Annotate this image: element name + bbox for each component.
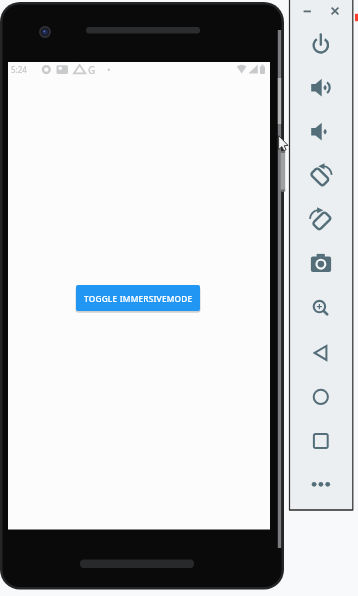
button[interactable] [299,3,315,19]
button[interactable] [303,379,339,415]
button[interactable] [327,3,343,19]
button[interactable] [303,335,339,371]
staticText: G [88,63,96,77]
button[interactable] [303,115,339,151]
button[interactable] [303,71,339,107]
button[interactable] [303,423,339,459]
staticText: 5:24 [11,64,27,75]
button[interactable] [303,203,339,239]
button[interactable] [303,247,339,283]
button[interactable] [303,27,339,63]
button[interactable] [303,467,339,503]
button[interactable]: TOGGLE IMMERSIVEMODE [76,285,200,311]
button[interactable] [303,291,339,327]
staticText: TOGGLE IMMERSIVEMODE [84,293,193,304]
button[interactable] [303,159,339,195]
